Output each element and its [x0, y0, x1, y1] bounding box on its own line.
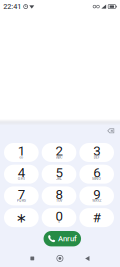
staticText: ∞ [19, 155, 23, 159]
staticText: GHI [18, 177, 25, 181]
button[interactable]: Back [75, 250, 99, 266]
button[interactable]: 6 [79, 165, 114, 184]
button[interactable]: 2 [42, 143, 76, 162]
staticText: 6 [93, 165, 100, 180]
staticText: MNO [92, 177, 101, 181]
staticText: + [58, 220, 60, 224]
staticText: 1 [18, 143, 25, 159]
staticText: 4 [18, 165, 25, 180]
button[interactable]: 7 [4, 186, 39, 205]
button[interactable]: Delete [103, 124, 118, 137]
button[interactable]: 5 [42, 165, 76, 184]
staticText: 9 [93, 187, 100, 202]
button[interactable]: 0 [42, 208, 76, 227]
staticText: 3 [93, 143, 100, 159]
staticText: ∗ [16, 210, 27, 226]
button[interactable]: Recents [20, 250, 44, 266]
staticText: 7 [18, 187, 25, 202]
staticText: 22:41 [3, 2, 21, 11]
staticText: 8 [55, 187, 62, 202]
button[interactable]: 8 [42, 186, 76, 205]
button[interactable]: 4 [4, 165, 39, 184]
staticText: Anruf [58, 234, 77, 243]
button[interactable]: # [79, 208, 114, 227]
button[interactable]: Anruf [43, 231, 81, 246]
staticText: 2 [55, 143, 62, 159]
button[interactable]: ∗ [4, 208, 39, 227]
staticText: DEF [94, 155, 100, 159]
staticText: ABC [56, 155, 62, 159]
button[interactable]: 1 [4, 143, 39, 162]
staticText: WXYZ [92, 198, 101, 203]
staticText: PQRS [17, 198, 26, 203]
button[interactable]: 9 [79, 186, 114, 205]
staticText: # [93, 210, 101, 225]
staticText: 5 [55, 165, 62, 180]
staticText: JKL [56, 177, 62, 181]
button[interactable]: Home [48, 250, 72, 266]
staticText: TUV [56, 198, 62, 203]
staticText: 0 [55, 208, 62, 224]
button[interactable]: 3 [79, 143, 114, 162]
